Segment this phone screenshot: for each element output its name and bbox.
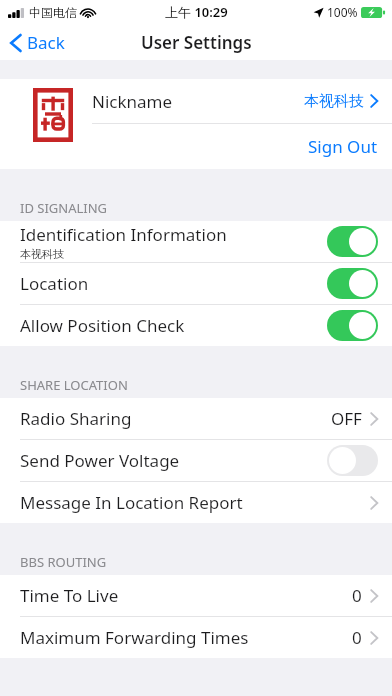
button[interactable]: Maximum Forwarding Times bbox=[0, 617, 392, 658]
button[interactable]: Toggle on bbox=[327, 310, 378, 341]
staticText: 上午 10:29 bbox=[165, 3, 228, 21]
staticText: Nickname bbox=[92, 90, 173, 113]
staticText: SHARE LOCATION bbox=[20, 376, 128, 392]
staticText: Maximum Forwarding Times bbox=[20, 626, 249, 649]
staticText: 本视科技 bbox=[304, 92, 364, 111]
button[interactable]: Toggle off bbox=[327, 445, 378, 476]
button[interactable]: Toggle on bbox=[327, 268, 378, 299]
staticText: Send Power Voltage bbox=[20, 449, 180, 472]
button[interactable]: Toggle on bbox=[327, 226, 378, 257]
staticText: Allow Position Check bbox=[20, 314, 185, 337]
staticText: ID SIGNALING bbox=[20, 199, 108, 215]
staticText: Back bbox=[27, 31, 65, 54]
button[interactable]: Allow Position Check bbox=[0, 305, 392, 346]
button[interactable]: Nickname bbox=[92, 79, 392, 123]
staticText: Message In Location Report bbox=[20, 491, 243, 514]
staticText: 0 bbox=[352, 584, 362, 607]
button[interactable]: Send Power Voltage bbox=[0, 440, 392, 481]
staticText: Time To Live bbox=[20, 584, 119, 607]
staticText: Identification Information bbox=[20, 223, 227, 246]
button[interactable]: Location bbox=[0, 263, 392, 304]
button[interactable]: Sign Out bbox=[92, 124, 392, 168]
staticText: Radio Sharing bbox=[20, 407, 132, 430]
staticText: BBS ROUTING bbox=[20, 553, 107, 569]
staticText: OFF bbox=[331, 407, 362, 430]
button[interactable]: Radio Sharing bbox=[0, 398, 392, 439]
staticText: Location bbox=[20, 272, 89, 295]
staticText: 0 bbox=[352, 626, 362, 649]
staticText: Sign Out bbox=[308, 135, 378, 158]
staticText: 中国电信 bbox=[29, 5, 77, 20]
staticText: 100% bbox=[327, 4, 358, 20]
button[interactable]: Message In Location Report bbox=[0, 482, 392, 523]
button[interactable]: Time To Live bbox=[0, 575, 392, 616]
staticText: 本视科技 bbox=[20, 247, 64, 261]
button[interactable]: Back bbox=[0, 27, 77, 58]
button[interactable]: Identification Information bbox=[0, 221, 392, 262]
staticText: User Settings bbox=[141, 31, 252, 54]
